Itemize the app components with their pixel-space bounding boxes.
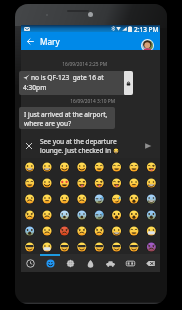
staticText: Mary: [40, 36, 60, 47]
button[interactable]: Nature: [60, 254, 80, 272]
button[interactable]: Clear: [21, 133, 36, 158]
staticText: See you at the departure: [40, 137, 117, 146]
staticText: 16/09/2014 3:10 PM: [21, 98, 115, 105]
button[interactable]: Back: [24, 35, 36, 47]
button[interactable]: Back: [21, 32, 160, 50]
staticText: lounge. Just checked in: [40, 146, 113, 155]
button[interactable]: Symbols: [120, 254, 140, 272]
button[interactable]: [21, 158, 160, 254]
staticText: 2:13 PM: [134, 25, 159, 32]
button[interactable]: Send: [136, 133, 160, 158]
button[interactable]: Recent: [21, 254, 40, 272]
button[interactable]: Travel: [100, 254, 120, 272]
button[interactable]: I just arrived at the airport, where are…: [19, 107, 115, 129]
button[interactable]: Contact photo: [141, 39, 154, 52]
staticText: 16/09/2014 2:25 PM: [21, 61, 107, 68]
button[interactable]: Food: [80, 254, 100, 272]
staticText: no is QF-123 gate 16 at: [31, 73, 104, 82]
button[interactable]: Smileys: [40, 254, 60, 272]
button[interactable]: no is QF-123 gate 16 at: [19, 71, 133, 95]
button[interactable]: Backspace: [140, 254, 160, 272]
staticText: I just arrived at the airport, where are…: [24, 110, 108, 128]
staticText: 4:30pm: [23, 83, 47, 92]
